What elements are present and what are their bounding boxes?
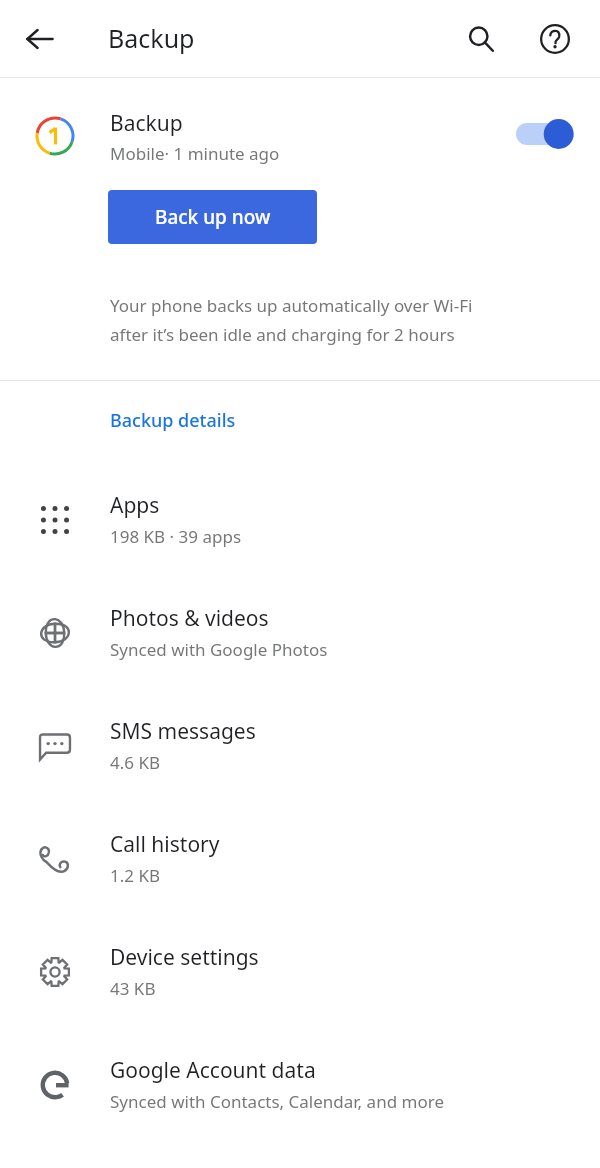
staticText: Backup [110,109,183,138]
staticText: Device settings [110,943,259,972]
staticText: Apps [110,491,160,520]
button[interactable]: Search [455,13,507,65]
staticText: Backup [108,21,195,55]
staticText: Back up now [155,204,271,230]
button[interactable]: Apps [0,463,600,576]
button[interactable]: Device settings [0,915,600,1028]
staticText: Backup details [110,408,236,433]
staticText: Photos & videos [110,604,269,633]
staticText: after it’s been idle and charging for 2 … [110,323,455,346]
staticText: SMS messages [110,717,256,746]
button[interactable]: Back [14,13,66,65]
staticText: Synced with Google Photos [110,638,328,661]
staticText: Mobile· 1 minute ago [110,142,280,165]
button[interactable]: Google Account data [0,1028,600,1141]
button[interactable]: Help [529,13,581,65]
button[interactable]: Photos & videos [0,576,600,689]
button[interactable]: SMS messages [0,689,600,802]
button[interactable]: Call history [0,802,600,915]
button[interactable]: Backup toggle [510,111,582,157]
button[interactable]: Backup [0,107,600,165]
staticText: 4.6 KB [110,751,160,774]
staticText: 1.2 KB [110,864,160,887]
staticText: 198 KB · 39 apps [110,525,242,548]
staticText: Google Account data [110,1056,316,1085]
button[interactable]: Backup details [0,399,600,441]
staticText: Call history [110,830,220,859]
staticText: Your phone backs up automatically over W… [110,294,473,317]
button[interactable]: Back up now [108,190,317,244]
staticText: Synced with Contacts, Calendar, and more [110,1090,444,1113]
staticText: 43 KB [110,977,156,1000]
